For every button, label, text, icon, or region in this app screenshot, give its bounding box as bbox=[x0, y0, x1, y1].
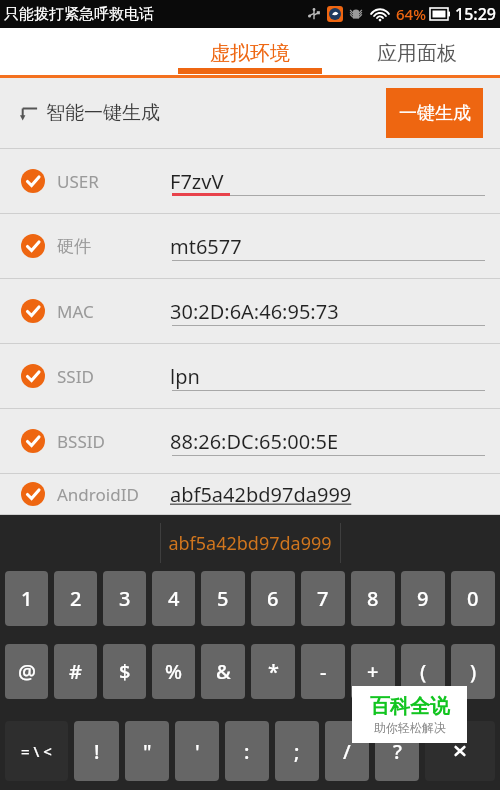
staticText: - bbox=[320, 658, 327, 685]
button[interactable]: ) bbox=[451, 644, 495, 699]
staticText: 应用面板 bbox=[377, 41, 457, 66]
button[interactable]: ( bbox=[401, 644, 445, 699]
button[interactable]: : bbox=[225, 721, 269, 781]
staticText: 4 bbox=[168, 585, 180, 612]
staticText: 64% bbox=[396, 4, 426, 24]
other: Enabled bbox=[21, 364, 45, 388]
button[interactable]: abf5a42bd97da999 bbox=[160, 515, 340, 571]
staticText: BSSID bbox=[57, 430, 105, 453]
button[interactable]: = \ < bbox=[5, 721, 68, 781]
other: Enabled bbox=[21, 169, 45, 193]
staticText: 5 bbox=[217, 585, 229, 612]
button[interactable]: Enabled bbox=[0, 344, 500, 408]
staticText: 1 bbox=[21, 585, 33, 612]
button[interactable]: 7 bbox=[301, 571, 345, 626]
button[interactable]: 1 bbox=[5, 571, 48, 626]
staticText: MAC bbox=[57, 300, 94, 323]
button[interactable]: / bbox=[325, 721, 369, 781]
button[interactable]: 3 bbox=[103, 571, 146, 626]
staticText: abf5a42bd97da999 bbox=[168, 531, 332, 556]
staticText: & bbox=[216, 658, 231, 685]
staticText: = \ < bbox=[21, 741, 52, 761]
staticText: 7 bbox=[317, 585, 329, 612]
button[interactable]: ! bbox=[74, 721, 119, 781]
staticText: 虚拟环境 bbox=[210, 41, 290, 66]
staticText: 一键生成 bbox=[399, 102, 471, 125]
staticText: 只能拨打紧急呼救电话 bbox=[4, 5, 154, 24]
button[interactable]: " bbox=[125, 721, 169, 781]
staticText: + bbox=[367, 658, 379, 685]
staticText: ; bbox=[294, 738, 300, 765]
staticText: USER bbox=[57, 170, 99, 193]
button[interactable] bbox=[0, 28, 166, 78]
button[interactable]: 虚拟环境 bbox=[166, 28, 333, 78]
button[interactable]: Enabled bbox=[0, 214, 500, 278]
staticText: 智能一键生成 bbox=[46, 101, 160, 125]
staticText: 2 bbox=[70, 585, 82, 612]
staticText: : bbox=[244, 738, 250, 765]
staticText: " bbox=[143, 738, 152, 765]
staticText: 百科全说 bbox=[370, 694, 450, 719]
button[interactable]: $ bbox=[103, 644, 146, 699]
staticText: F7zvV bbox=[170, 168, 224, 195]
staticText: ' bbox=[195, 738, 200, 765]
button[interactable]: Backspace bbox=[425, 721, 495, 781]
staticText: 8 bbox=[367, 585, 379, 612]
button[interactable]: ' bbox=[175, 721, 219, 781]
button[interactable]: Enabled bbox=[0, 474, 500, 514]
button[interactable]: 4 bbox=[152, 571, 195, 626]
staticText: SSID bbox=[57, 365, 94, 388]
button[interactable]: Enabled bbox=[0, 149, 500, 213]
button[interactable]: 6 bbox=[251, 571, 295, 626]
button[interactable]: # bbox=[54, 644, 97, 699]
staticText: lpn bbox=[170, 363, 200, 390]
staticText: AndroidID bbox=[57, 483, 139, 506]
button[interactable]: 2 bbox=[54, 571, 97, 626]
staticText: $ bbox=[119, 658, 131, 685]
staticText: 0 bbox=[467, 585, 479, 612]
staticText: @ bbox=[18, 658, 36, 685]
staticText: / bbox=[343, 738, 351, 765]
button[interactable]: 智能一键生成 bbox=[20, 101, 160, 125]
button[interactable]: ; bbox=[275, 721, 319, 781]
button[interactable]: ? bbox=[375, 721, 419, 781]
button[interactable]: 9 bbox=[401, 571, 445, 626]
button[interactable]: + bbox=[351, 644, 395, 699]
button[interactable]: 一键生成 bbox=[386, 88, 483, 138]
button[interactable]: 8 bbox=[351, 571, 395, 626]
button[interactable]: & bbox=[201, 644, 245, 699]
staticText: * bbox=[268, 658, 279, 685]
button[interactable]: % bbox=[152, 644, 195, 699]
other: Enabled bbox=[21, 299, 45, 323]
staticText: mt6577 bbox=[170, 233, 242, 260]
staticText: 88:26:DC:65:00:5E bbox=[170, 428, 339, 455]
staticText: 6 bbox=[267, 585, 279, 612]
button[interactable]: 5 bbox=[201, 571, 245, 626]
button[interactable]: * bbox=[251, 644, 295, 699]
staticText: 3 bbox=[119, 585, 131, 612]
staticText: ) bbox=[470, 658, 477, 685]
staticText: 硬件 bbox=[57, 236, 91, 257]
button[interactable]: - bbox=[301, 644, 345, 699]
button[interactable]: Enabled bbox=[0, 279, 500, 343]
staticText: 9 bbox=[417, 585, 429, 612]
staticText: ? bbox=[393, 738, 402, 765]
button[interactable]: 应用面板 bbox=[333, 28, 500, 78]
other: Enabled bbox=[21, 234, 45, 258]
staticText: 15:29 bbox=[455, 3, 496, 25]
staticText: 30:2D:6A:46:95:73 bbox=[170, 298, 339, 325]
staticText: abf5a42bd97da999 bbox=[170, 481, 352, 508]
staticText: % bbox=[165, 658, 183, 685]
button[interactable]: @ bbox=[5, 644, 48, 699]
staticText: ( bbox=[420, 658, 427, 685]
button[interactable]: Enabled bbox=[0, 409, 500, 473]
staticText: ! bbox=[94, 738, 100, 765]
staticText: 助你轻松解决 bbox=[374, 720, 446, 735]
staticText: # bbox=[69, 658, 82, 685]
button[interactable]: 0 bbox=[451, 571, 495, 626]
other: Enabled bbox=[21, 429, 45, 453]
other: Enabled bbox=[21, 482, 45, 506]
